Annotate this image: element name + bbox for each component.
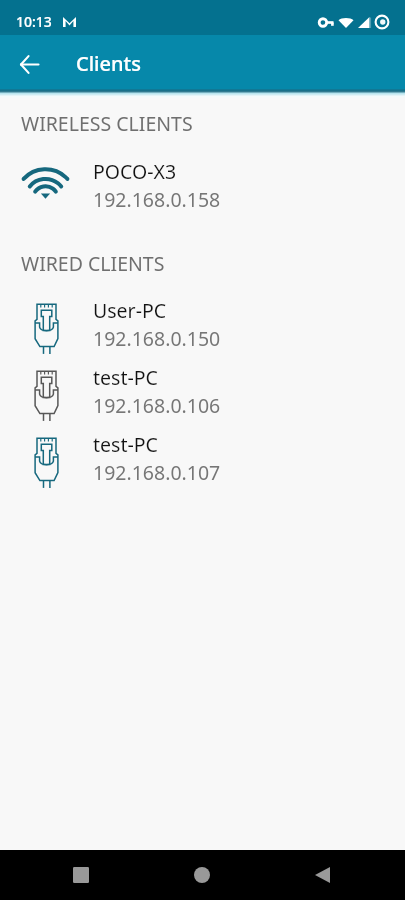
button[interactable]: test-PC xyxy=(0,423,405,485)
staticText: User-PC xyxy=(93,297,167,324)
button[interactable]: Back xyxy=(298,851,346,899)
staticText: POCO-X3 xyxy=(93,158,177,185)
button[interactable]: User-PC xyxy=(0,289,405,351)
staticText: WIRED CLIENTS xyxy=(21,250,165,277)
staticText: 10:13 xyxy=(16,12,52,31)
button[interactable]: Recents xyxy=(57,851,105,899)
staticText: Clients xyxy=(76,50,141,77)
staticText: WIRELESS CLIENTS xyxy=(21,110,193,137)
button[interactable]: Back xyxy=(9,44,49,84)
button[interactable]: test-PC xyxy=(0,356,405,418)
staticText: test-PC xyxy=(93,364,158,391)
staticText: 192.168.0.158 xyxy=(93,186,221,213)
button[interactable]: POCO-X3 xyxy=(0,150,405,212)
staticText: 192.168.0.106 xyxy=(93,392,221,419)
staticText: 192.168.0.107 xyxy=(93,459,221,486)
staticText: test-PC xyxy=(93,431,158,458)
staticText: 192.168.0.150 xyxy=(93,325,221,352)
button[interactable]: Home xyxy=(178,851,226,899)
